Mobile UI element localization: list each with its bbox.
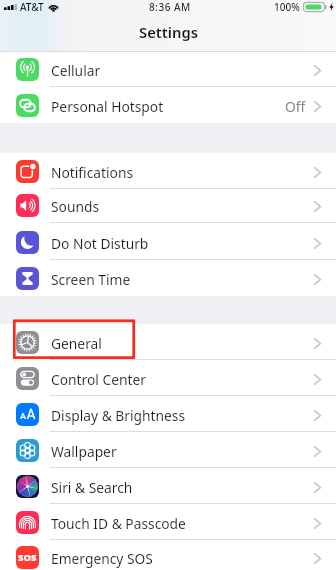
staticText: 100% (274, 0, 300, 14)
staticText: AT&T (20, 0, 44, 14)
staticText: Display & Brightness (51, 406, 186, 425)
staticText: SOS (18, 551, 37, 564)
button[interactable]: Notifications (0, 153, 336, 189)
staticText: Siri & Search (51, 478, 133, 497)
staticText: Emergency SOS (51, 549, 153, 568)
staticText: Settings (139, 22, 198, 42)
staticText: Screen Time (51, 270, 131, 289)
staticText: 8:36 AM (149, 0, 191, 14)
button[interactable]: Screen Time (0, 260, 336, 296)
button[interactable]: Display & Brightness (0, 396, 336, 432)
staticText: Touch ID & Passcode (51, 514, 186, 533)
staticText: Wallpaper (51, 442, 117, 461)
button[interactable]: Cellular (0, 52, 336, 87)
staticText: Notifications (51, 163, 134, 182)
staticText: Sounds (51, 197, 100, 216)
staticText: Personal Hotspot (51, 97, 164, 116)
button[interactable]: Touch ID & Passcode (0, 504, 336, 540)
button[interactable]: General (0, 324, 336, 360)
button[interactable]: Wallpaper (0, 432, 336, 468)
button[interactable]: Sounds (0, 188, 336, 223)
staticText: Off (285, 97, 306, 116)
button[interactable]: Control Center (0, 360, 336, 396)
button[interactable]: Personal Hotspot (0, 87, 336, 123)
staticText: Do Not Disturb (51, 234, 149, 253)
button[interactable]: Siri & Search (0, 468, 336, 504)
button[interactable]: SOS (0, 539, 336, 570)
staticText: Control Center (51, 370, 146, 389)
staticText: General (51, 334, 102, 353)
staticText: Cellular (51, 61, 101, 80)
button[interactable]: Do Not Disturb (0, 224, 336, 260)
